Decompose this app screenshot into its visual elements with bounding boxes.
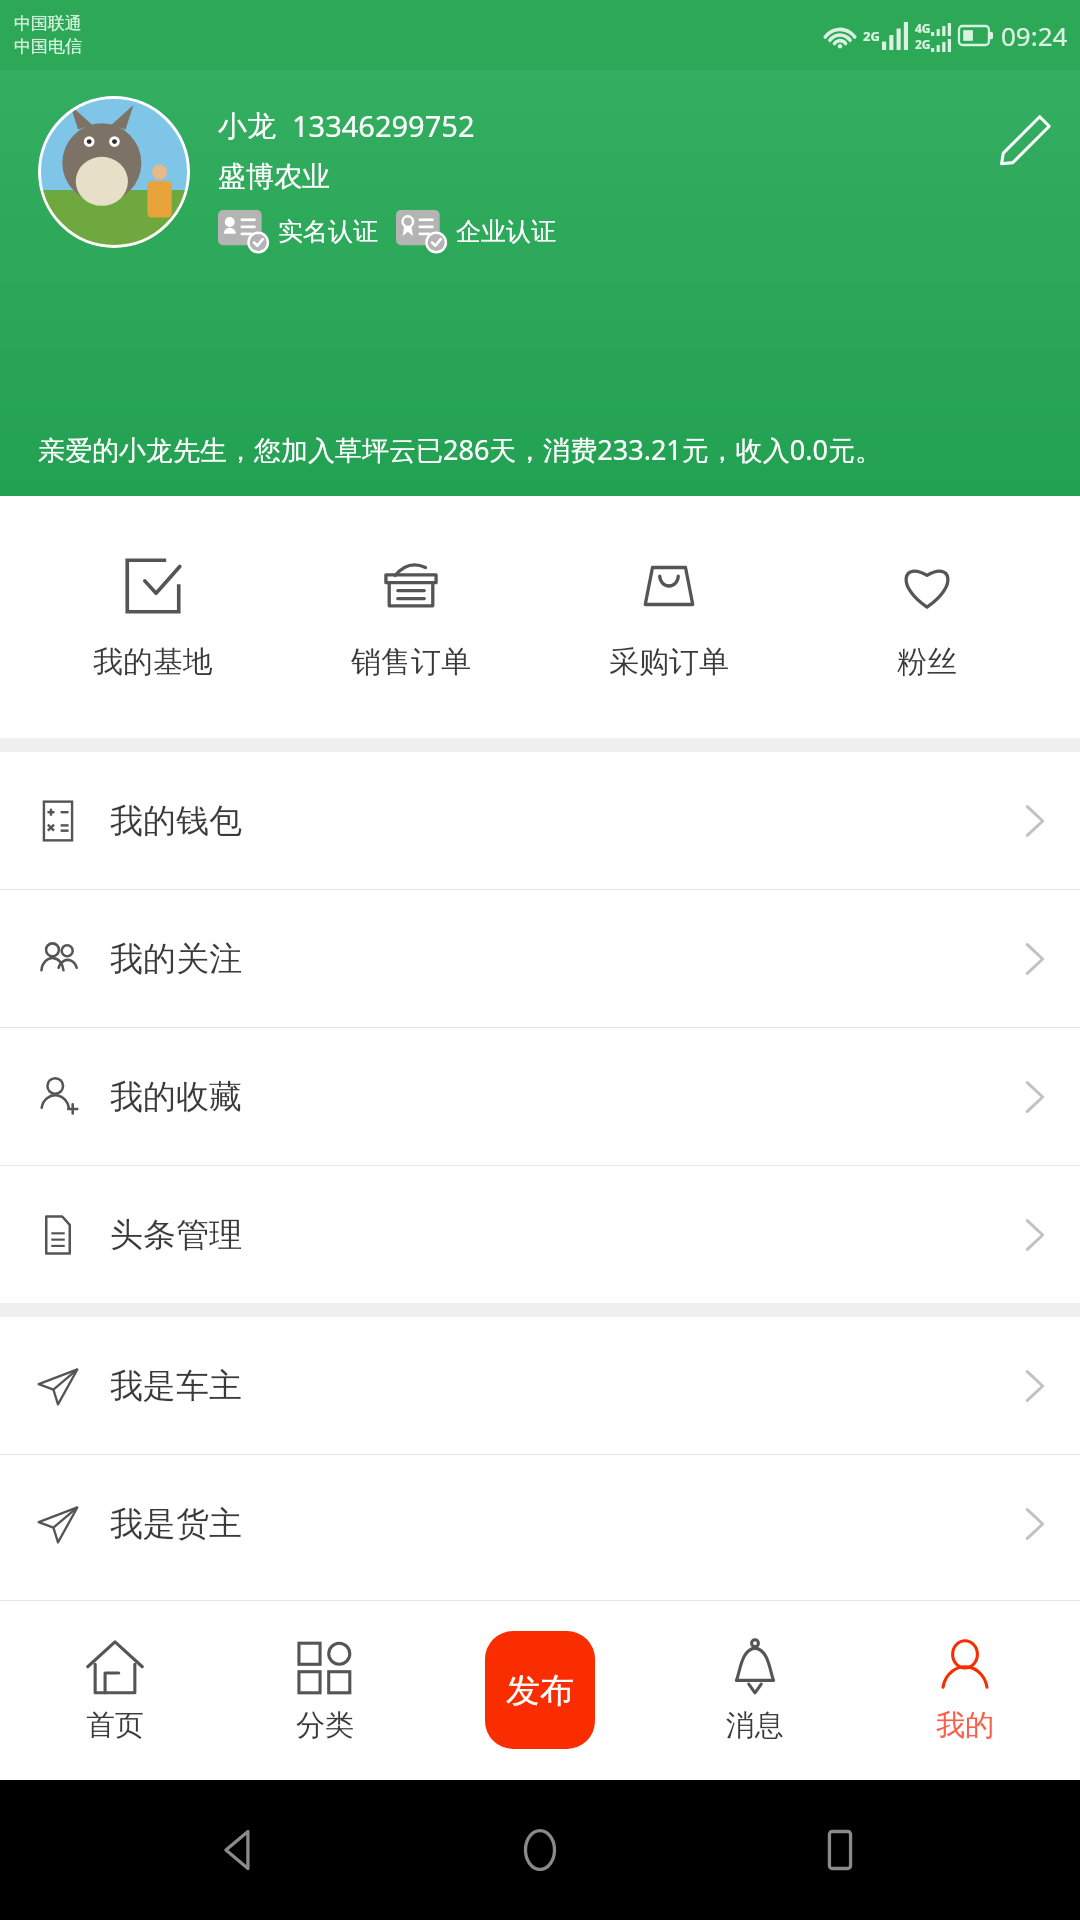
staticText: 13346299752 (292, 106, 475, 145)
staticText: 我是车主 (110, 1365, 242, 1407)
button[interactable]: 返回 (180, 1790, 300, 1910)
staticText: 小龙 (218, 108, 276, 145)
staticText: 2G (915, 36, 931, 52)
staticText: 我的收藏 (110, 1076, 242, 1118)
staticText: 4G (915, 20, 931, 36)
staticText: 实名认证 (278, 216, 378, 247)
button[interactable]: 头条管理 (0, 1166, 1080, 1303)
staticText: 分类 (296, 1707, 354, 1744)
staticText: 我是货主 (110, 1503, 242, 1545)
button[interactable]: 粉丝 (822, 496, 1032, 738)
staticText: 我的关注 (110, 938, 242, 980)
staticText: 我的基地 (93, 643, 213, 681)
staticText: 2G (863, 27, 880, 45)
button[interactable]: 我是货主 (0, 1455, 1080, 1592)
button[interactable]: 企业认证 (396, 210, 556, 252)
staticText: 盛博农业 (218, 159, 330, 194)
button[interactable]: 我的关注 (0, 890, 1080, 1027)
staticText: 首页 (86, 1707, 144, 1744)
button[interactable]: 我的基地 (48, 496, 258, 738)
button[interactable]: 我的钱包 (0, 752, 1080, 889)
button[interactable]: 我的收藏 (0, 1028, 1080, 1165)
button[interactable]: 销售订单 (306, 496, 516, 738)
button[interactable]: 分类 (230, 1600, 420, 1780)
staticText: 发布 (506, 1669, 574, 1712)
button[interactable]: 最近任务 (780, 1790, 900, 1910)
button[interactable]: 消息 (660, 1600, 850, 1780)
staticText: 我的 (936, 1707, 994, 1744)
staticText: 亲爱的小龙先生，您加入草坪云已286天，消费233.21元，收入0.0元。 (38, 431, 882, 468)
staticText: 中国电信 (14, 36, 82, 57)
button[interactable]: 首页 (20, 1600, 210, 1780)
staticText: 中国联通 (14, 13, 82, 34)
staticText: 企业认证 (456, 216, 556, 247)
staticText: 销售订单 (351, 643, 471, 681)
button[interactable]: 编辑 (996, 110, 1052, 166)
staticText: 采购订单 (609, 643, 729, 681)
staticText: 头条管理 (110, 1214, 242, 1256)
button[interactable]: 主页 (480, 1790, 600, 1910)
button[interactable]: 实名认证 (218, 210, 378, 252)
button[interactable] (38, 96, 190, 248)
staticText: 粉丝 (897, 643, 957, 681)
button[interactable]: 我是车主 (0, 1317, 1080, 1454)
staticText: 消息 (726, 1707, 784, 1744)
button[interactable]: 采购订单 (564, 496, 774, 738)
button[interactable]: 我的 (870, 1600, 1060, 1780)
button[interactable]: 发布 (440, 1600, 640, 1780)
staticText: 09:24 (1001, 18, 1068, 53)
staticText: 我的钱包 (110, 800, 242, 842)
